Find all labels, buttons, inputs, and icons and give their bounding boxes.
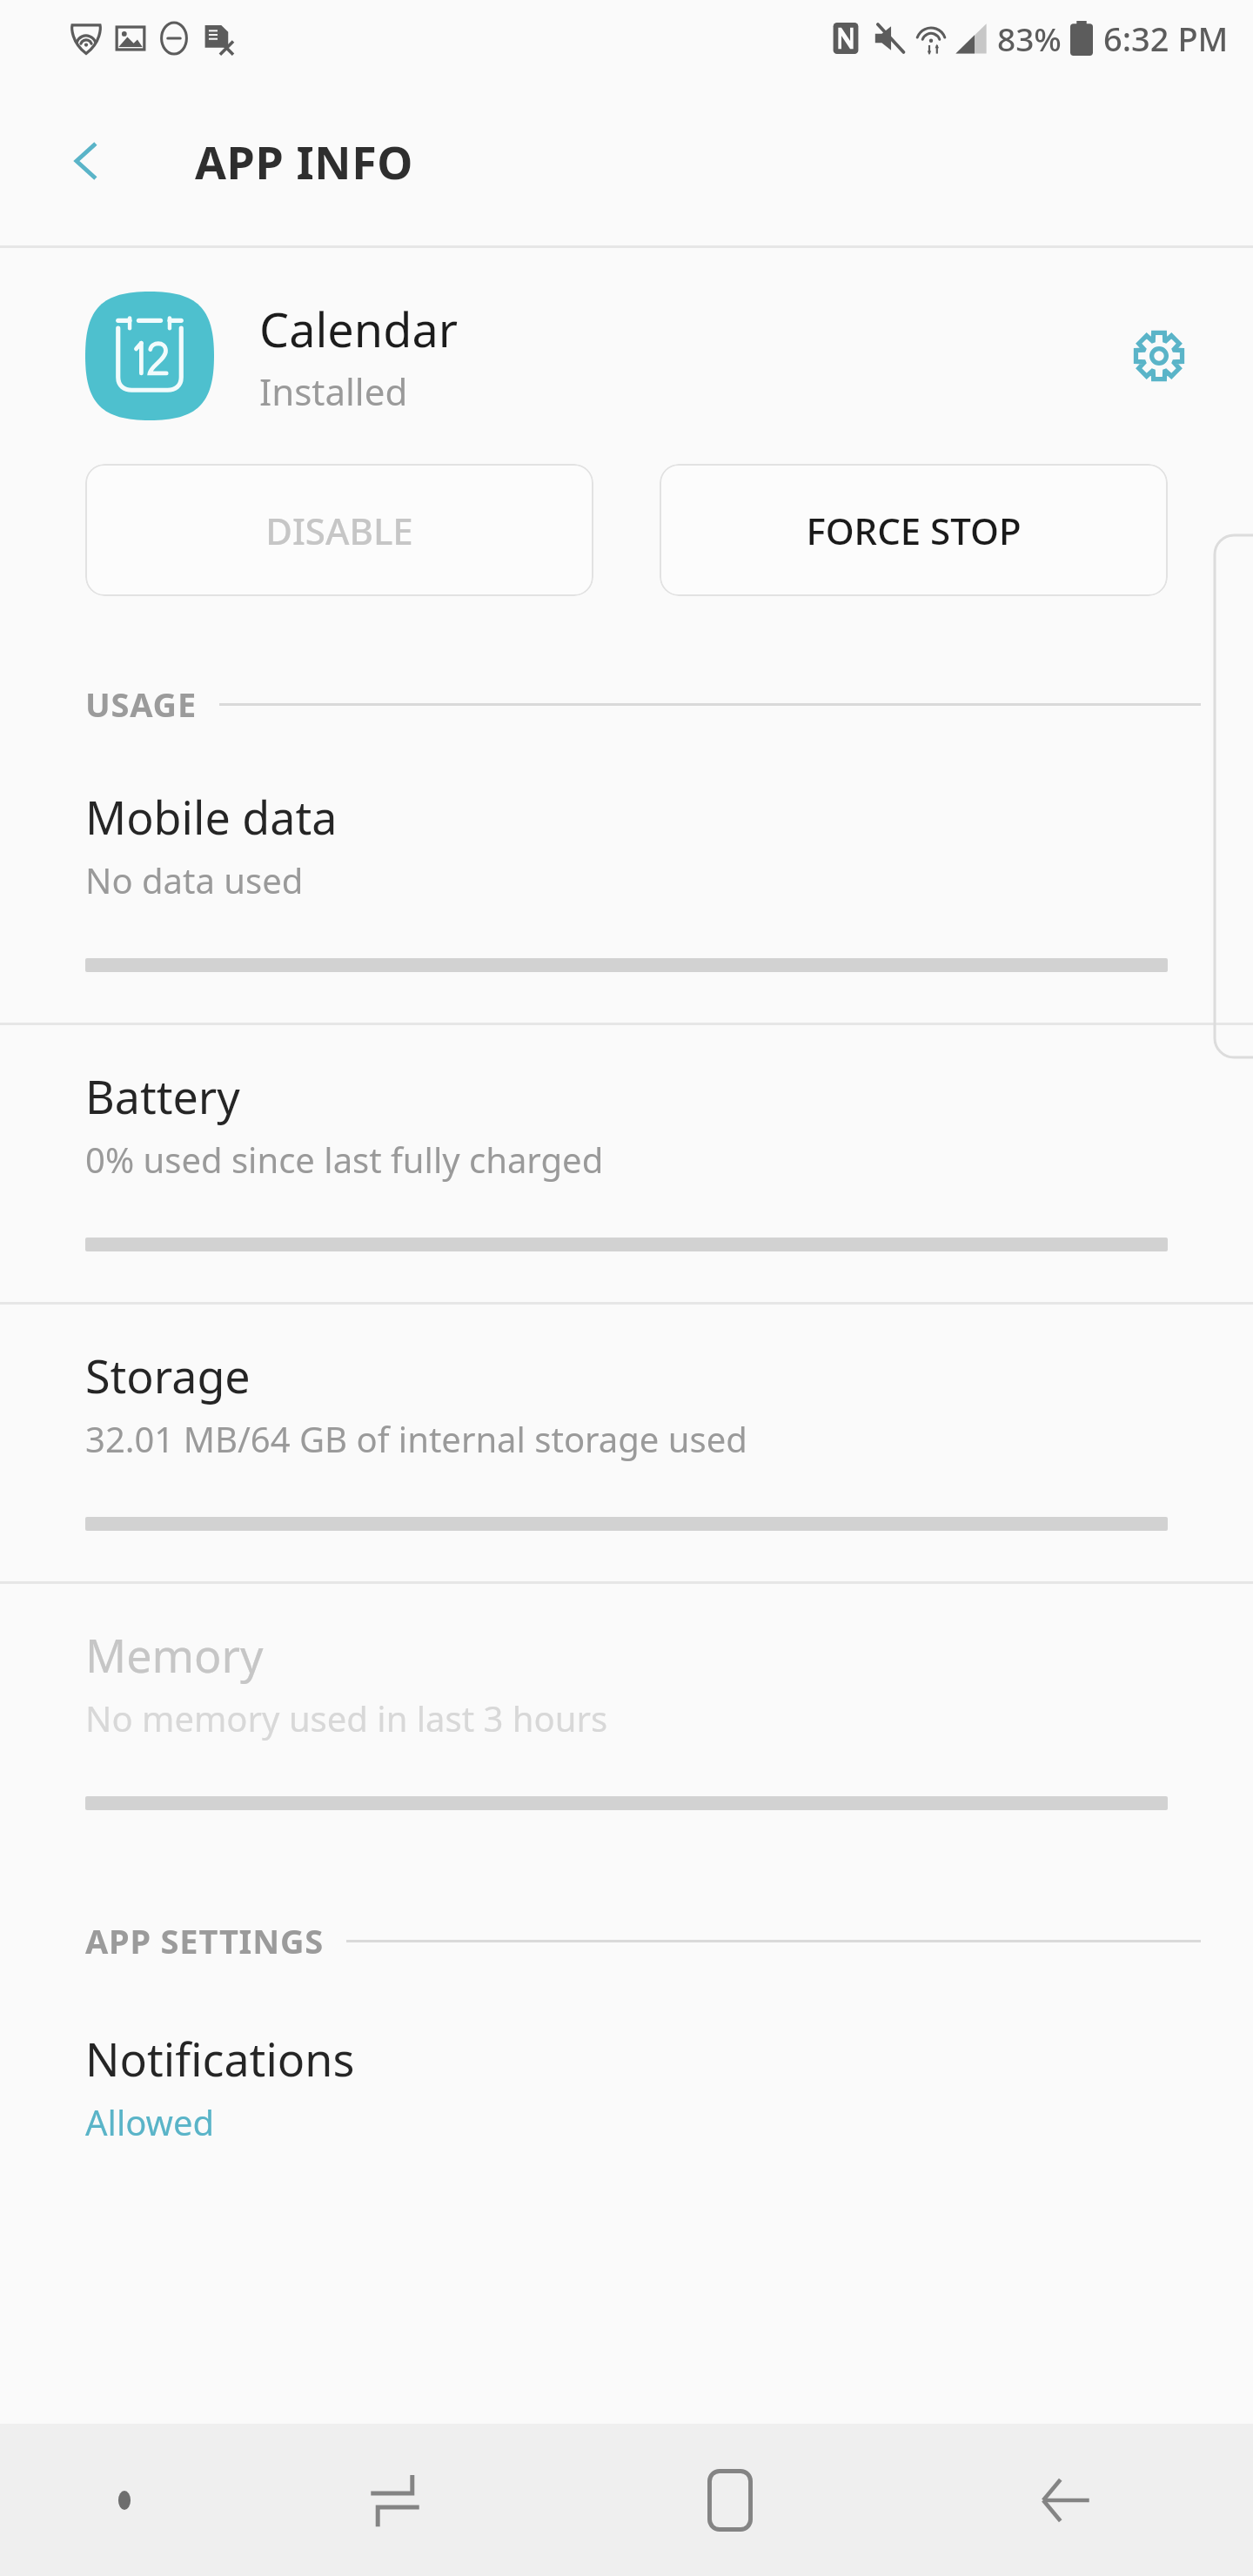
- button[interactable]: Battery: [0, 1025, 1253, 1302]
- staticText: FORCE STOP: [806, 506, 1022, 555]
- staticText: 32.01 MB/64 GB of internal storage used: [85, 1415, 747, 1462]
- staticText: No data used: [85, 856, 304, 903]
- button[interactable]: Calendar: [0, 286, 1253, 426]
- button[interactable]: Back: [897, 2424, 1232, 2576]
- staticText: DISABLE: [265, 506, 413, 555]
- staticText: APP SETTINGS: [85, 1918, 324, 1963]
- button[interactable]: Back: [52, 128, 118, 194]
- button[interactable]: Notifications: [0, 1982, 1253, 2145]
- button[interactable]: Mobile data: [0, 746, 1253, 1023]
- button[interactable]: Storage: [0, 1305, 1253, 1581]
- staticText: Notifications: [85, 2028, 355, 2090]
- staticText: APP INFO: [195, 131, 414, 192]
- staticText: 6:32 PM: [1103, 16, 1229, 61]
- staticText: Mobile data: [85, 786, 338, 848]
- staticText: 0% used since last fully charged: [85, 1136, 604, 1183]
- staticText: Allowed: [85, 2098, 215, 2145]
- staticText: 83%: [997, 17, 1062, 60]
- staticText: No memory used in last 3 hours: [85, 1694, 608, 1741]
- staticText: Installed: [259, 366, 408, 416]
- staticText: Storage: [85, 1345, 251, 1406]
- staticText: Battery: [85, 1065, 240, 1127]
- button[interactable]: Recent apps: [227, 2424, 562, 2576]
- button[interactable]: Memory: [0, 1584, 1253, 1861]
- button[interactable]: Home: [562, 2424, 897, 2576]
- staticText: USAGE: [85, 681, 197, 727]
- button[interactable]: DISABLE: [85, 464, 593, 596]
- staticText: Calendar: [259, 297, 458, 361]
- button[interactable]: App settings: [1117, 314, 1201, 398]
- staticText: Memory: [85, 1624, 264, 1686]
- button[interactable]: FORCE STOP: [660, 464, 1168, 596]
